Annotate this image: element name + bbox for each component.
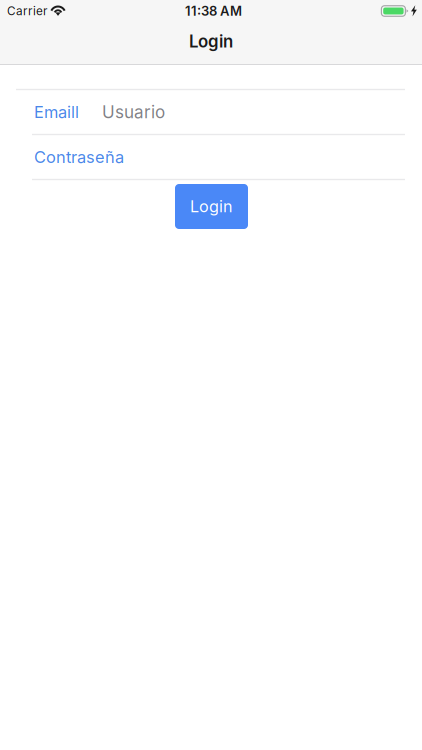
staticText: Emaill [34, 102, 79, 122]
button[interactable]: Emaill [0, 90, 422, 134]
staticText: Login [190, 197, 233, 216]
button[interactable]: Login [175, 184, 248, 229]
staticText: Carrier [7, 4, 47, 18]
staticText: Login [189, 31, 233, 51]
staticText: 11:38 AM [185, 3, 242, 19]
staticText: Usuario [102, 102, 165, 122]
staticText: Contraseña [34, 147, 124, 167]
button[interactable]: Contraseña [0, 135, 422, 179]
